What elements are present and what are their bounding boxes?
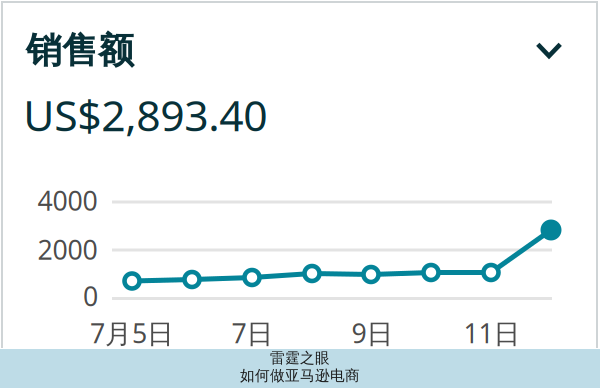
button[interactable]: Collapse sales section — [519, 26, 578, 75]
staticText: 雷霆之眼 — [270, 349, 330, 367]
staticText: 如何做亚马逊电商 — [240, 367, 360, 385]
staticText: 7日 — [231, 315, 273, 351]
staticText: 2000 — [37, 232, 97, 267]
staticText: 0 — [83, 278, 98, 314]
staticText: 4000 — [37, 183, 97, 218]
staticText: US$2,893.40 — [23, 86, 267, 143]
staticText: 7月5日 — [90, 315, 174, 351]
staticText: 9日 — [351, 315, 393, 351]
staticText: 销售额 — [26, 28, 134, 73]
staticText: 11日 — [463, 315, 520, 351]
